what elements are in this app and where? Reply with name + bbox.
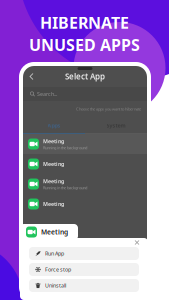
staticText: Meeting (41, 228, 68, 236)
button[interactable]: Run App (29, 247, 139, 260)
staticText: Uninstall (45, 282, 66, 289)
button[interactable]: Force stop (29, 263, 139, 276)
button[interactable]: Meeting (23, 194, 147, 214)
button[interactable]: Uninstall (29, 279, 139, 292)
staticText: Running in the background (43, 185, 87, 190)
button[interactable]: System (85, 117, 147, 134)
button[interactable]: Meeting (23, 134, 147, 154)
staticText: UNUSED APPS (29, 34, 140, 55)
staticText: Meeting (43, 160, 64, 168)
staticText: Force stop (45, 266, 71, 273)
button[interactable]: Meeting (23, 154, 147, 174)
button[interactable]: Meeting (23, 174, 147, 194)
staticText: Run App (45, 250, 64, 257)
staticText: Select App (65, 71, 105, 82)
button[interactable]: Close (132, 238, 142, 247)
staticText: System (106, 122, 125, 129)
button[interactable]: Apps (23, 117, 85, 134)
staticText: HIBERNATE (40, 12, 129, 33)
staticText: Search... (37, 90, 57, 98)
staticText: Apps (47, 122, 60, 129)
staticText: Choose the apps you want to hibernate (76, 106, 141, 112)
staticText: Meeting (43, 138, 64, 145)
staticText: Meeting (43, 200, 64, 208)
staticText: Running in the background (43, 145, 87, 150)
staticText: Meeting (43, 178, 64, 185)
button[interactable]: Back (26, 70, 37, 82)
